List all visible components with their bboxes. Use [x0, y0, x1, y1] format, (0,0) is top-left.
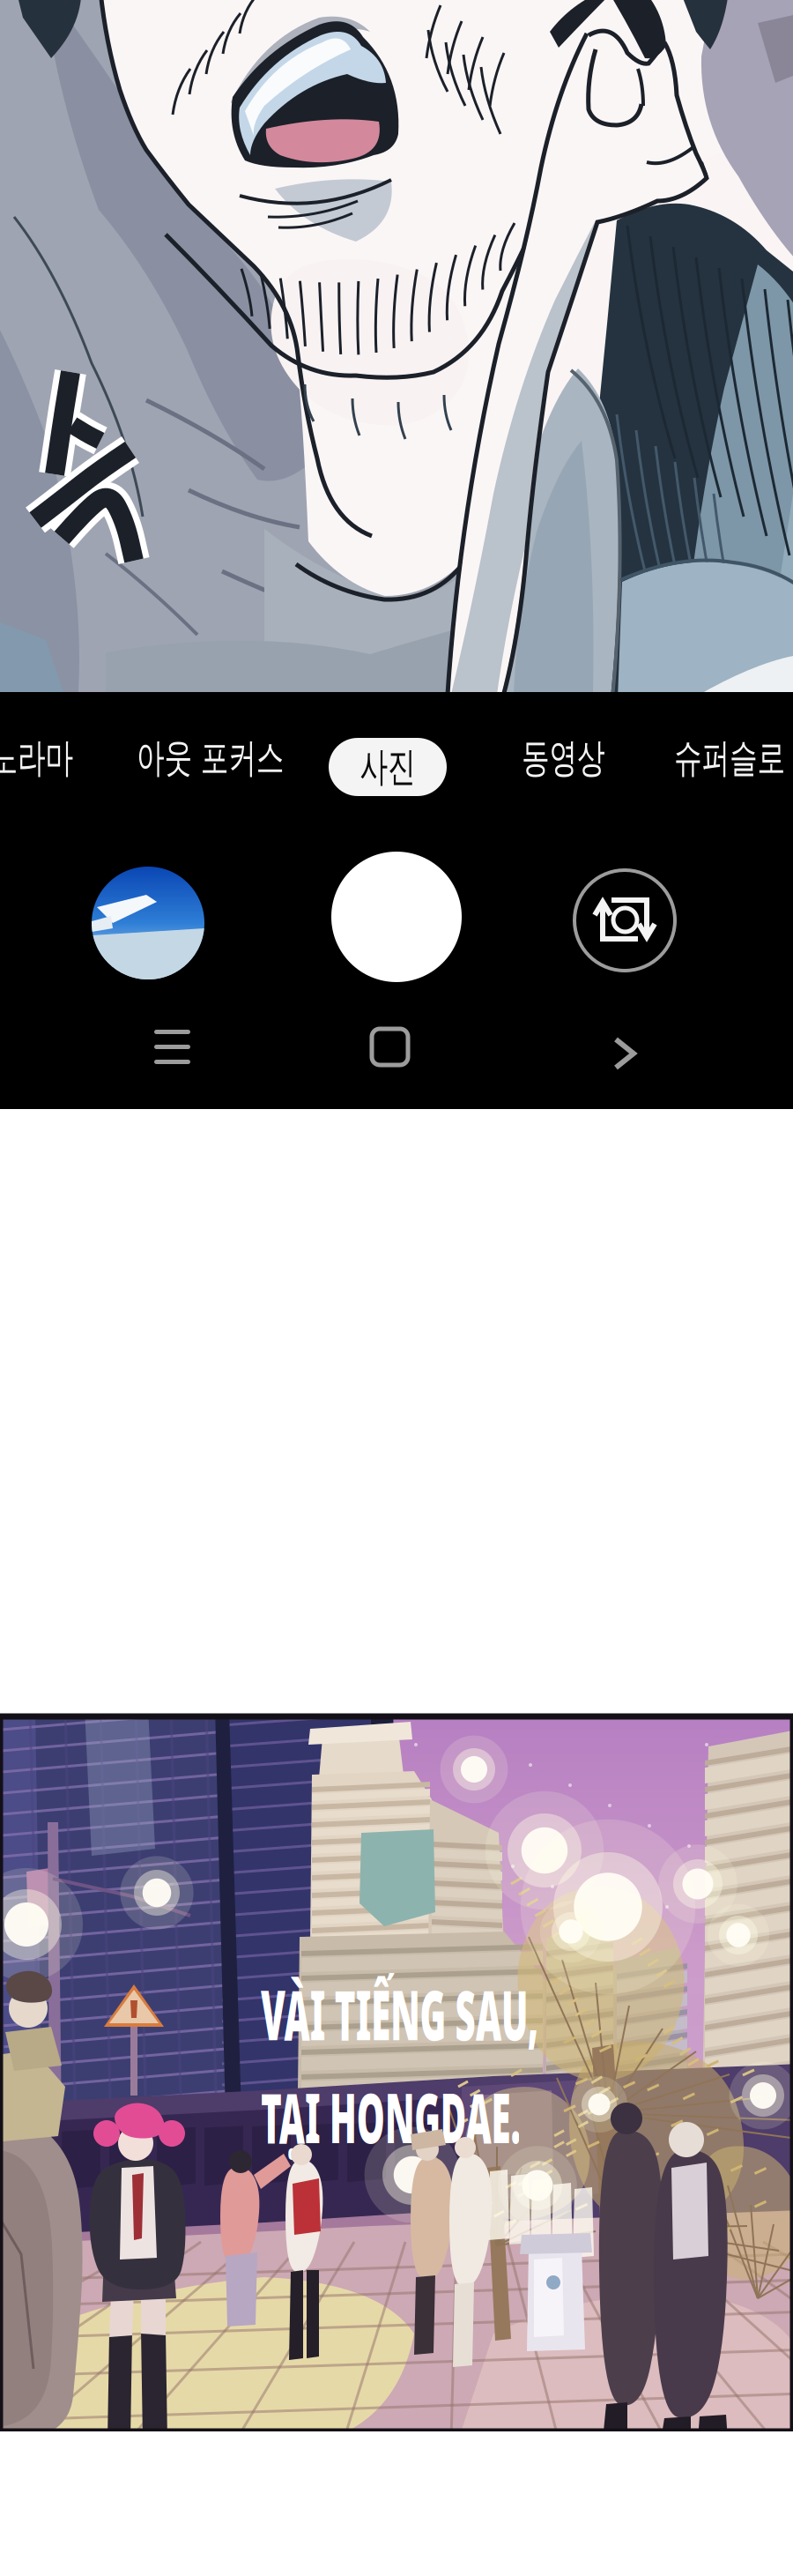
- staticText: TẠI HONGDAE.: [261, 2071, 760, 2162]
- button[interactable]: 동영상: [522, 733, 641, 783]
- button[interactable]: 사진: [329, 738, 447, 796]
- button[interactable]: 파노라마: [0, 733, 121, 783]
- button[interactable]: 슈퍼슬로: [674, 733, 793, 783]
- button[interactable]: Back: [600, 1024, 651, 1085]
- staticText: 아웃 포커스: [137, 733, 347, 783]
- staticText: 파노라마: [0, 733, 121, 783]
- staticText: 슈퍼슬로: [674, 733, 793, 783]
- staticText: 동영상: [522, 733, 641, 783]
- button[interactable]: Home: [358, 1015, 422, 1079]
- staticText: VÀI TIẾNG SAU,: [261, 1969, 793, 2059]
- staticText: 사진: [348, 742, 427, 792]
- button[interactable]: Recent apps: [140, 1016, 204, 1078]
- button[interactable]: 아웃 포커스: [137, 733, 347, 783]
- button[interactable]: Switch camera: [574, 870, 675, 971]
- button[interactable]: Take photo: [331, 852, 462, 982]
- button[interactable]: Gallery: [92, 867, 204, 979]
